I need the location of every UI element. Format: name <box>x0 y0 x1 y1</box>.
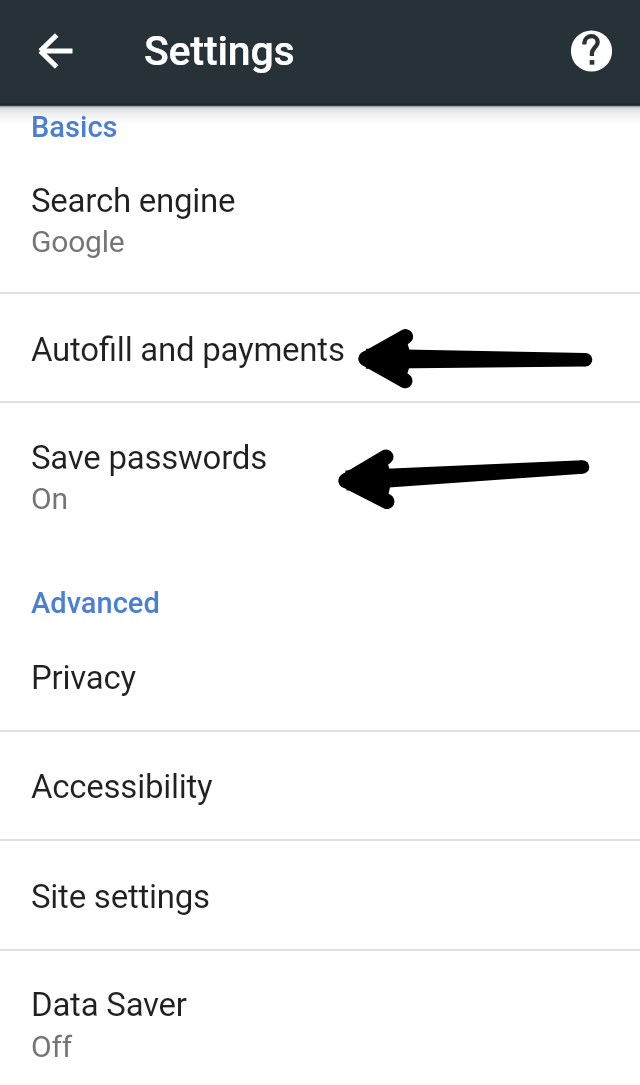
staticText: Site settings <box>31 877 210 916</box>
button[interactable]: Save passwords <box>0 403 640 533</box>
button[interactable]: Data Saver <box>0 951 640 1085</box>
staticText: Off <box>31 1029 72 1064</box>
staticText: Settings <box>144 27 295 75</box>
button[interactable]: Search engine <box>0 160 640 292</box>
staticText: On <box>31 481 68 516</box>
button[interactable]: Help and feedback <box>559 19 623 83</box>
staticText: Google <box>31 224 125 259</box>
staticText: Save passwords <box>31 438 267 477</box>
staticText: Search engine <box>31 181 236 220</box>
staticText: Advanced <box>31 586 160 620</box>
button[interactable]: Accessibility <box>0 732 640 839</box>
staticText: Data Saver <box>31 985 187 1024</box>
staticText: Accessibility <box>31 767 213 806</box>
staticText: Basics <box>31 110 118 144</box>
staticText: Privacy <box>31 658 136 697</box>
button[interactable]: Autofill and payments <box>0 294 640 401</box>
button[interactable]: Navigate up <box>24 19 88 83</box>
staticText: Autofill and payments <box>31 330 345 369</box>
button[interactable]: Privacy <box>0 637 640 730</box>
button[interactable]: Site settings <box>0 841 640 949</box>
